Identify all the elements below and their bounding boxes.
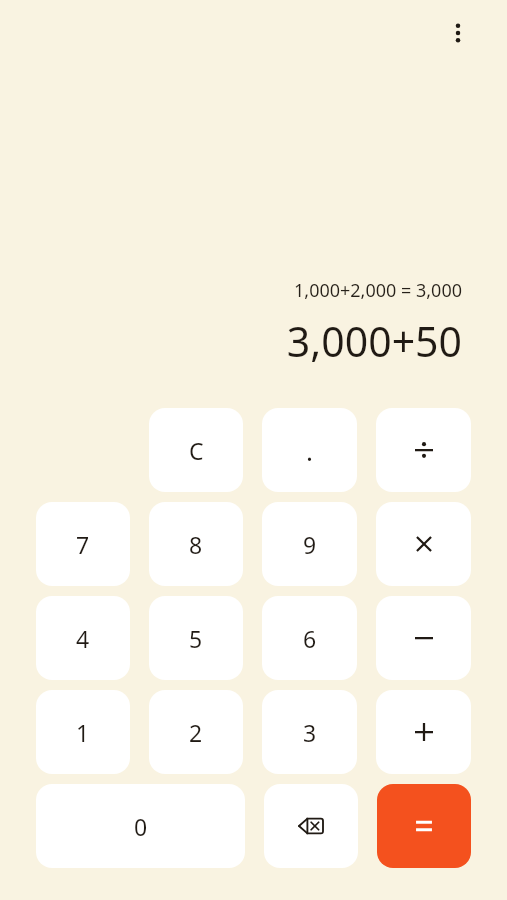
button[interactable]: 4 (36, 596, 130, 680)
staticText: 4 (76, 623, 90, 654)
staticText: 5 (189, 623, 203, 654)
staticText: . (306, 433, 313, 468)
staticText: C (189, 435, 204, 466)
button[interactable]: Equals (377, 784, 471, 868)
staticText: 6 (303, 623, 317, 654)
staticText: 2 (189, 717, 203, 748)
button[interactable]: 1 (36, 690, 130, 774)
staticText: 1,000+2,000 = 3,000 (294, 278, 462, 303)
button[interactable]: 9 (262, 502, 357, 586)
staticText: 1 (76, 717, 90, 748)
staticText: 8 (189, 529, 203, 560)
button[interactable]: Minus (376, 596, 471, 680)
staticText: 7 (76, 529, 90, 560)
button[interactable]: 5 (149, 596, 243, 680)
button[interactable]: . (262, 408, 357, 492)
button[interactable]: Multiply (376, 502, 471, 586)
staticText: 3 (303, 717, 317, 748)
button[interactable]: 3 (262, 690, 357, 774)
button[interactable]: More options (435, 10, 481, 56)
button[interactable]: 0 (36, 784, 245, 868)
button[interactable]: Divide (376, 408, 471, 492)
button[interactable]: 6 (262, 596, 357, 680)
staticText: 0 (134, 811, 148, 842)
button[interactable]: Backspace (264, 784, 358, 868)
button[interactable]: C (149, 408, 243, 492)
staticText: 3,000+50 (286, 313, 462, 369)
button[interactable]: 7 (36, 502, 130, 586)
staticText: 9 (303, 529, 317, 560)
button[interactable]: Plus (376, 690, 471, 774)
button[interactable]: 2 (149, 690, 243, 774)
button[interactable]: 8 (149, 502, 243, 586)
